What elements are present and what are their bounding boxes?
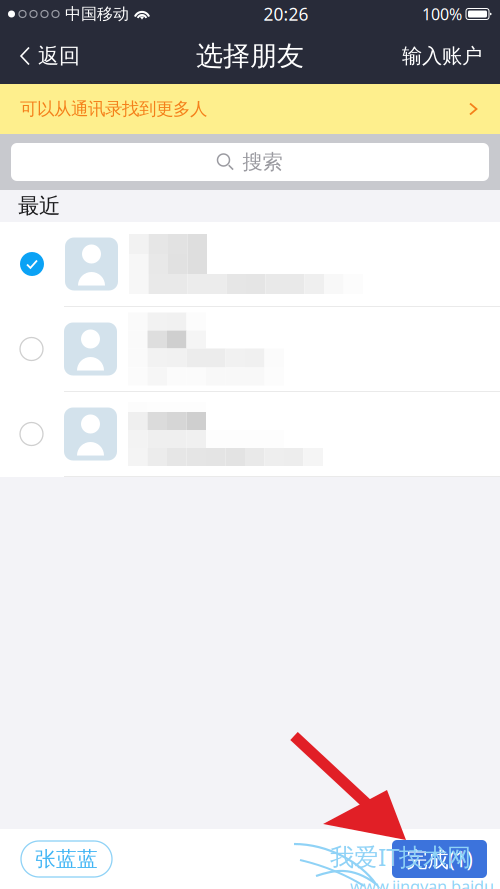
staticText: 20:26: [263, 2, 308, 26]
staticText: 100%: [422, 3, 462, 25]
staticText: 我爱IT技术网: [330, 840, 471, 873]
staticText: 输入账户: [402, 43, 482, 69]
staticText: 返回: [38, 43, 80, 69]
staticText: 最近: [18, 193, 60, 219]
staticText: 搜索: [242, 149, 282, 175]
staticText: 张蓝蓝: [35, 846, 98, 872]
staticText: www.jingyan.baidu.com: [350, 875, 498, 889]
button[interactable]: 完成(1): [392, 840, 487, 878]
button[interactable]: 返回: [0, 35, 80, 77]
staticText: 选择朋友: [196, 39, 304, 73]
button[interactable]: 输入账户: [402, 35, 500, 77]
button[interactable]: 搜索: [0, 134, 500, 190]
button[interactable]: [0, 222, 500, 307]
button[interactable]: [0, 392, 500, 477]
staticText: 完成(1): [406, 844, 472, 874]
button[interactable]: 可以从通讯录找到更多人: [0, 84, 500, 134]
staticText: 可以从通讯录找到更多人: [20, 98, 207, 120]
button[interactable]: [0, 307, 500, 392]
staticText: 中国移动: [65, 4, 129, 24]
button[interactable]: 张蓝蓝: [21, 841, 112, 877]
